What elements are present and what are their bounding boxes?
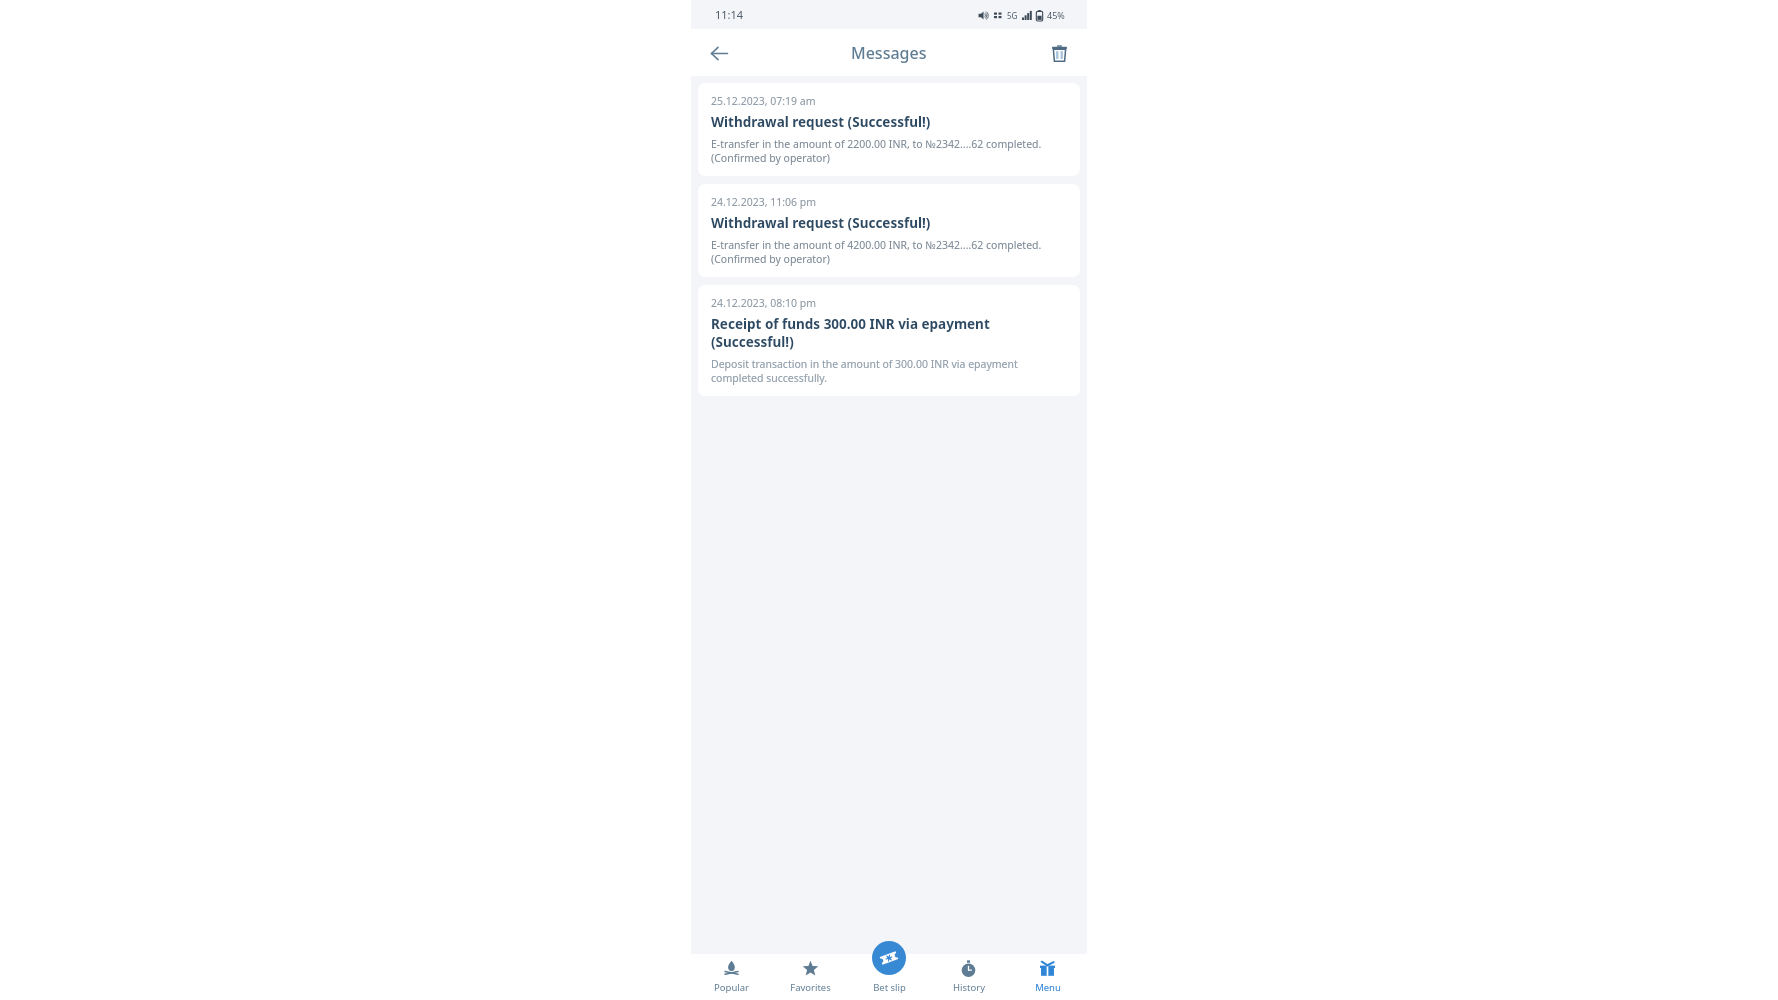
staticText: Receipt of funds 300.00 INR via epayment… — [711, 315, 1067, 351]
staticText: 11:14 — [715, 7, 744, 22]
staticText: 45% — [1047, 9, 1065, 21]
staticText: 24.12.2023, 08:10 pm — [711, 296, 817, 310]
button[interactable]: Bet slip — [852, 941, 926, 1000]
staticText: 24.12.2023, 11:06 pm — [711, 195, 817, 209]
button[interactable]: 24.12.2023, 11:06 pm — [698, 184, 1080, 277]
staticText: 25.12.2023, 07:19 am — [711, 94, 816, 108]
staticText: Popular — [714, 981, 749, 994]
staticText: E-transfer in the amount of 4200.00 INR,… — [711, 238, 1067, 266]
other: Bet slip — [872, 941, 906, 975]
staticText: 5G — [1007, 10, 1018, 21]
button[interactable]: 25.12.2023, 07:19 am — [698, 83, 1080, 176]
button[interactable]: Menu — [1008, 954, 1087, 1000]
staticText: Favorites — [790, 981, 831, 994]
button[interactable]: Delete all messages — [1041, 35, 1077, 71]
button[interactable]: Favorites — [771, 954, 850, 1000]
button[interactable]: Popular — [691, 954, 771, 1000]
staticText: Bet slip — [873, 981, 906, 994]
staticText: E-transfer in the amount of 2200.00 INR,… — [711, 137, 1067, 165]
staticText: History — [953, 981, 985, 994]
button[interactable]: Back — [701, 35, 737, 71]
button[interactable]: 24.12.2023, 08:10 pm — [698, 285, 1080, 396]
staticText: Withdrawal request (Successful!) — [711, 113, 931, 131]
staticText: Withdrawal request (Successful!) — [711, 214, 931, 232]
staticText: Menu — [1035, 981, 1061, 994]
button[interactable]: History — [929, 954, 1008, 1000]
staticText: Messages — [851, 42, 927, 64]
staticText: Deposit transaction in the amount of 300… — [711, 357, 1067, 385]
